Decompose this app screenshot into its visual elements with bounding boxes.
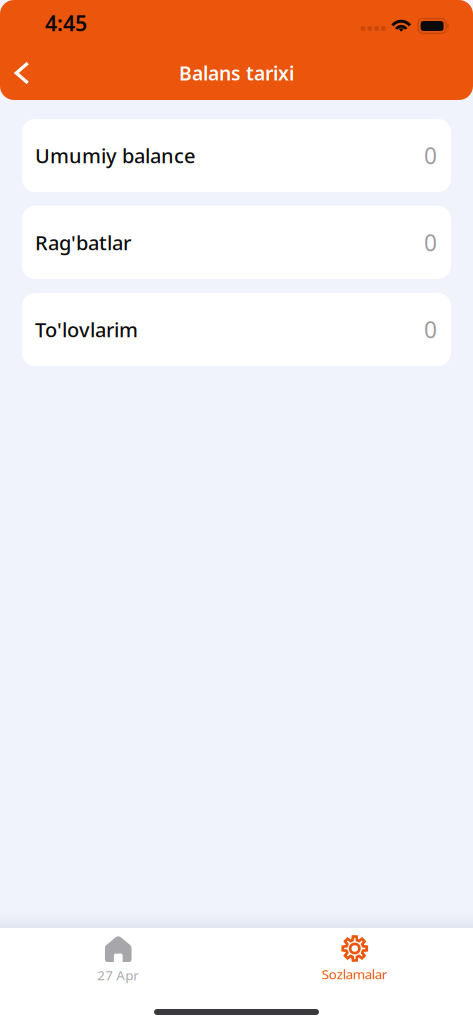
staticText: 0 bbox=[424, 140, 437, 171]
staticText: 27 Apr bbox=[97, 966, 139, 984]
staticText: Sozlamalar bbox=[322, 965, 388, 983]
staticText: Umumiy balance bbox=[35, 142, 195, 169]
staticText: To'lovlarim bbox=[35, 316, 138, 343]
button[interactable]: Back bbox=[2, 48, 42, 98]
staticText: Balans tarixi bbox=[179, 60, 294, 86]
button[interactable]: To'lovlarim bbox=[22, 293, 451, 366]
button[interactable]: Rag'batlar bbox=[22, 206, 451, 279]
button[interactable]: Sozlamalar bbox=[236, 928, 473, 1009]
button[interactable]: 27 Apr bbox=[0, 928, 236, 1009]
staticText: 0 bbox=[424, 314, 437, 345]
button[interactable]: Umumiy balance bbox=[22, 119, 451, 192]
staticText: 0 bbox=[424, 227, 437, 258]
staticText: 4:45 bbox=[45, 8, 87, 38]
staticText: Rag'batlar bbox=[35, 229, 131, 256]
